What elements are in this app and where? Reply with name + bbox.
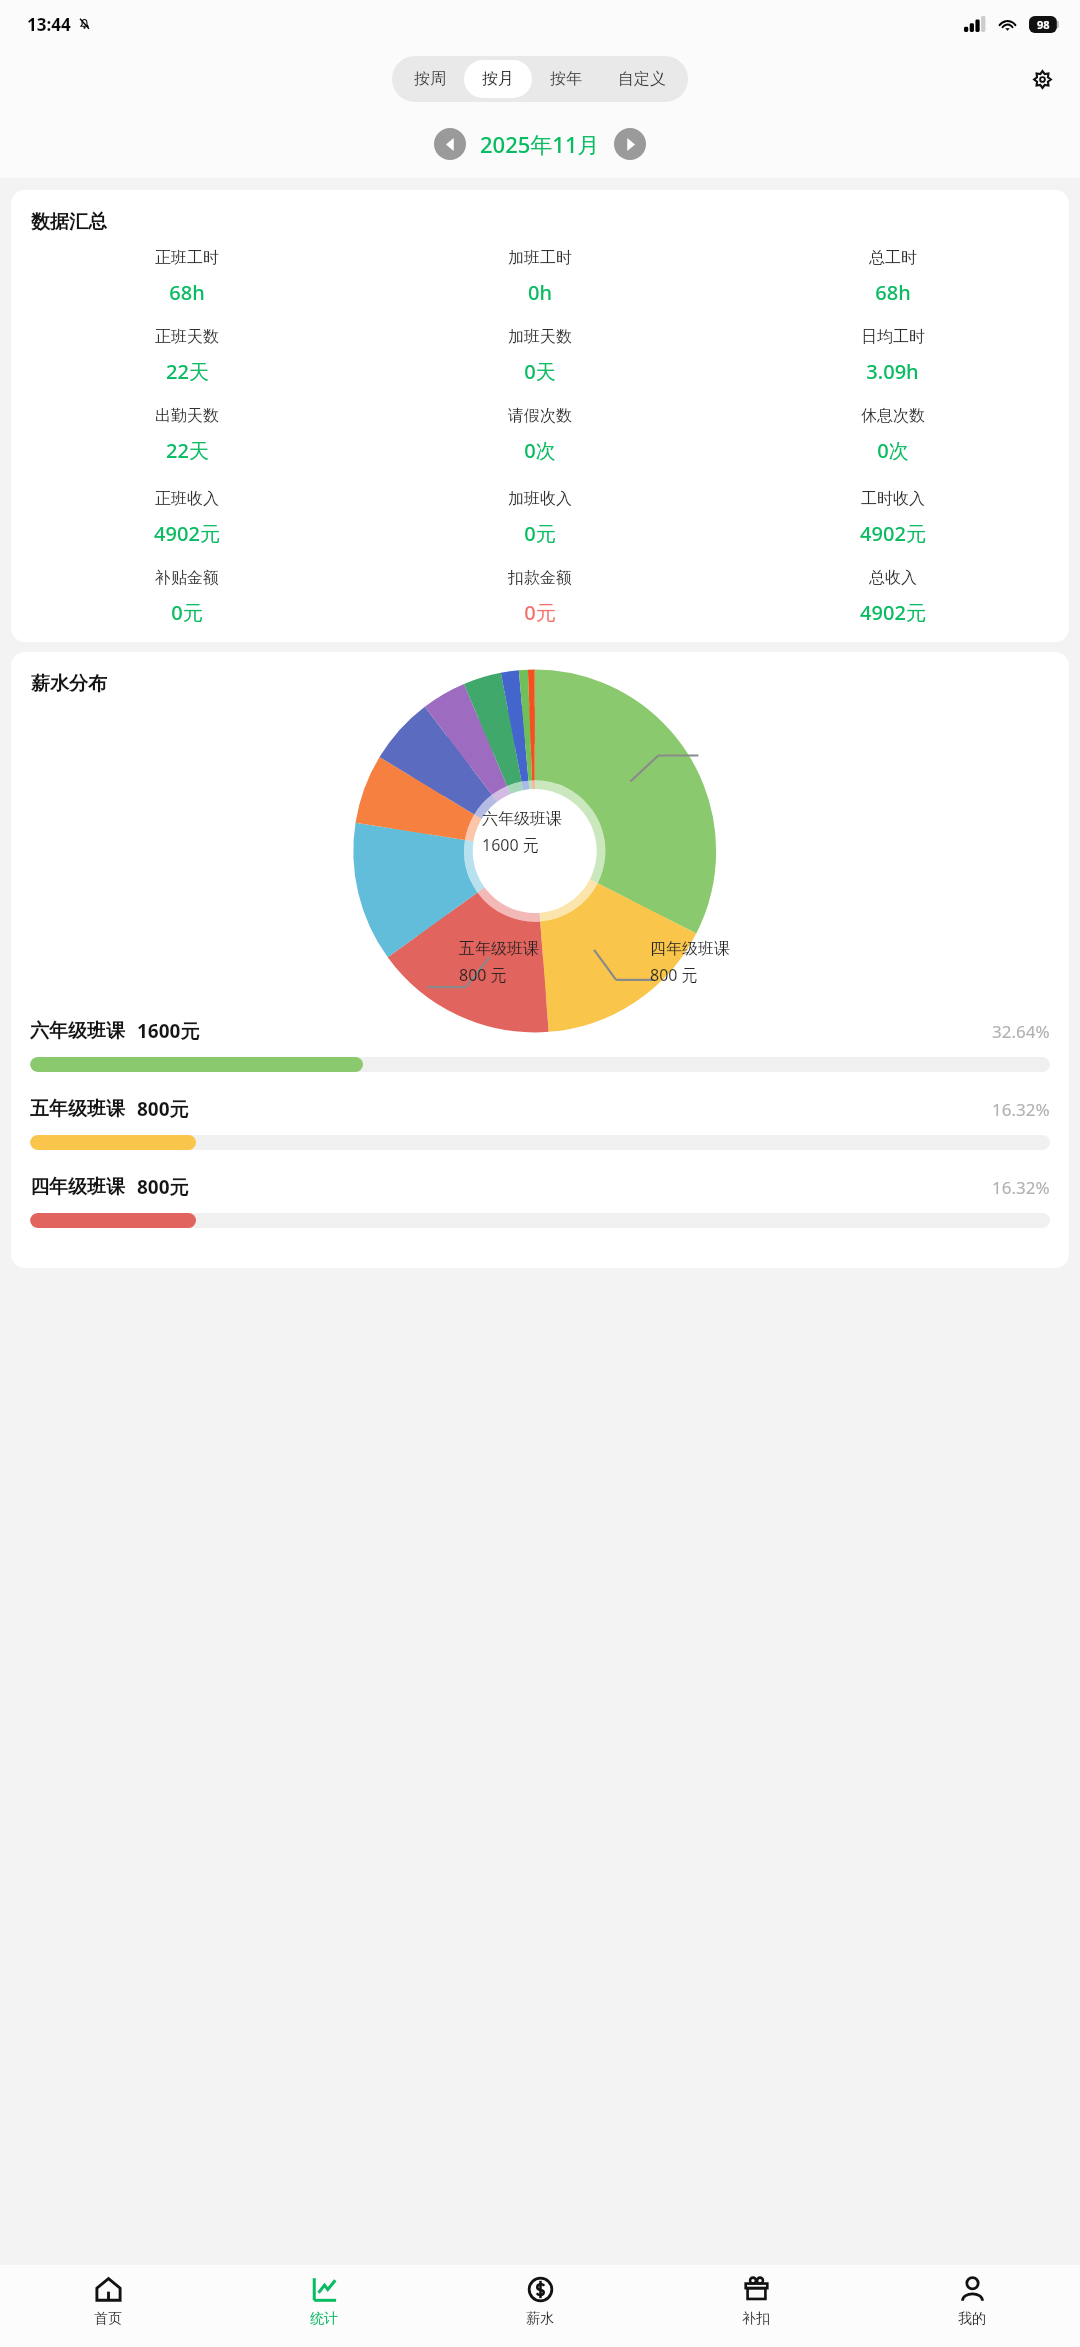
- staticText: 22天: [166, 437, 209, 464]
- staticText: 16.32%: [992, 1176, 1050, 1199]
- staticText: 补扣: [742, 2310, 770, 2328]
- staticText: 加班收入: [508, 489, 572, 509]
- staticText: 总工时: [869, 248, 917, 268]
- button[interactable]: 工时收入: [716, 489, 1069, 547]
- staticText: 0次: [877, 437, 909, 464]
- button[interactable]: 按年: [532, 60, 600, 98]
- staticText: 按周: [414, 69, 446, 89]
- button[interactable]: 总工时: [716, 248, 1069, 306]
- staticText: 4902元: [860, 520, 926, 547]
- staticText: 22天: [166, 358, 209, 385]
- staticText: 加班工时: [508, 248, 572, 268]
- staticText: 0元: [171, 599, 203, 626]
- button[interactable]: 正班天数: [11, 327, 363, 385]
- staticText: 800 元: [650, 964, 698, 986]
- button[interactable]: 我的: [864, 2265, 1080, 2347]
- staticText: 工时收入: [861, 489, 925, 509]
- staticText: 数据汇总: [31, 210, 107, 234]
- staticText: 0天: [524, 358, 556, 385]
- button[interactable]: Settings: [1022, 59, 1062, 99]
- staticText: 四年级班课: [30, 1175, 125, 1199]
- staticText: 4902元: [860, 599, 926, 626]
- staticText: 98: [1037, 17, 1050, 32]
- staticText: 四年级班课: [650, 939, 730, 959]
- staticText: 800 元: [459, 964, 507, 986]
- staticText: 正班天数: [155, 327, 219, 347]
- button[interactable]: 加班工时: [363, 248, 716, 306]
- staticText: 按月: [482, 69, 514, 89]
- staticText: 日均工时: [861, 327, 925, 347]
- staticText: 0元: [524, 599, 556, 626]
- staticText: 统计: [310, 2310, 338, 2328]
- staticText: 800元: [137, 1096, 189, 1122]
- staticText: 薪水分布: [31, 672, 107, 696]
- button[interactable]: 总收入: [716, 568, 1069, 626]
- button[interactable]: Next month: [614, 128, 646, 160]
- staticText: 自定义: [618, 69, 666, 89]
- staticText: 出勤天数: [155, 406, 219, 426]
- button[interactable]: 日均工时: [716, 327, 1069, 385]
- staticText: 总收入: [869, 568, 917, 588]
- staticText: 扣款金额: [508, 568, 572, 588]
- button[interactable]: 薪水: [432, 2265, 648, 2347]
- staticText: 休息次数: [861, 406, 925, 426]
- staticText: 68h: [169, 279, 205, 306]
- staticText: 首页: [94, 2310, 122, 2328]
- button[interactable]: 休息次数: [716, 406, 1069, 464]
- staticText: 32.64%: [992, 1020, 1050, 1043]
- staticText: 补贴金额: [155, 568, 219, 588]
- staticText: 1600元: [137, 1018, 200, 1044]
- staticText: 0次: [524, 437, 556, 464]
- staticText: 五年级班课: [30, 1097, 125, 1121]
- button[interactable]: 出勤天数: [11, 406, 363, 464]
- button[interactable]: 六年级班课: [11, 1018, 1069, 1072]
- staticText: 六年级班课: [30, 1019, 125, 1043]
- staticText: 13:44: [27, 13, 71, 36]
- button[interactable]: 补扣: [648, 2265, 864, 2347]
- staticText: 0h: [528, 279, 552, 306]
- button[interactable]: Previous month: [434, 128, 466, 160]
- staticText: 800元: [137, 1174, 189, 1200]
- staticText: 2025年11月: [480, 129, 600, 159]
- staticText: 请假次数: [508, 406, 572, 426]
- staticText: 68h: [875, 279, 911, 306]
- button[interactable]: 自定义: [600, 60, 684, 98]
- staticText: 正班工时: [155, 248, 219, 268]
- staticText: 加班天数: [508, 327, 572, 347]
- staticText: 16.32%: [992, 1098, 1050, 1121]
- staticText: 我的: [958, 2310, 986, 2328]
- button[interactable]: 首页: [0, 2265, 216, 2347]
- staticText: 正班收入: [155, 489, 219, 509]
- button[interactable]: 扣款金额: [363, 568, 716, 626]
- staticText: 五年级班课: [459, 939, 539, 959]
- button[interactable]: 统计: [216, 2265, 432, 2347]
- button[interactable]: 补贴金额: [11, 568, 363, 626]
- button[interactable]: 加班天数: [363, 327, 716, 385]
- button[interactable]: 正班工时: [11, 248, 363, 306]
- button[interactable]: 按周: [396, 60, 464, 98]
- button[interactable]: 四年级班课: [11, 1174, 1069, 1228]
- staticText: 薪水: [526, 2310, 554, 2328]
- staticText: 4902元: [154, 520, 220, 547]
- button[interactable]: 按月: [464, 60, 532, 98]
- button[interactable]: 正班收入: [11, 489, 363, 547]
- staticText: 六年级班课: [482, 809, 562, 829]
- staticText: 1600 元: [482, 834, 539, 856]
- button[interactable]: 五年级班课: [11, 1096, 1069, 1150]
- staticText: 3.09h: [866, 358, 919, 385]
- button[interactable]: 加班收入: [363, 489, 716, 547]
- button[interactable]: 请假次数: [363, 406, 716, 464]
- staticText: 0元: [524, 520, 556, 547]
- staticText: 按年: [550, 69, 582, 89]
